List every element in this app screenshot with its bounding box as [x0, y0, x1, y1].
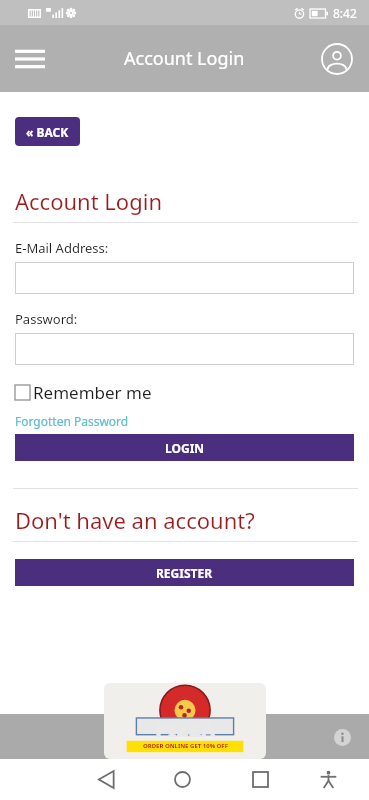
staticText: REGISTER: [156, 565, 213, 581]
button[interactable]: LOGIN: [15, 434, 354, 461]
button[interactable]: Forgotten Password: [15, 413, 129, 429]
staticText: Password:: [15, 310, 78, 328]
button[interactable]: Accessibility: [304, 759, 352, 800]
button[interactable]: Recent apps: [232, 759, 288, 800]
staticText: PIZZA: [155, 716, 216, 743]
button[interactable]: Account: [315, 37, 359, 81]
button[interactable]: Menu: [8, 37, 52, 81]
staticText: LOGIN: [165, 440, 205, 456]
staticText: Forgotten Password: [15, 413, 129, 429]
button[interactable]: Pizza advertisement: [104, 683, 266, 759]
staticText: « BACK: [26, 124, 69, 140]
staticText: Remember me: [33, 381, 152, 404]
button[interactable]: REGISTER: [15, 559, 354, 586]
button[interactable]: « BACK: [15, 117, 80, 146]
staticText: Account Login: [15, 186, 162, 216]
button[interactable]: Back: [78, 759, 134, 800]
staticText: Don't have an account?: [15, 505, 255, 535]
staticText: Account Login: [124, 46, 245, 71]
button[interactable]: [15, 262, 354, 294]
button[interactable]: Ad information: [330, 725, 354, 749]
staticText: 8:42: [333, 5, 357, 21]
staticText: ORDER ONLINE GET 10% OFF: [143, 742, 228, 750]
staticText: E-Mail Address:: [15, 239, 109, 257]
button[interactable]: Remember me: [15, 381, 152, 404]
button[interactable]: [15, 333, 354, 365]
button[interactable]: Home: [154, 759, 210, 800]
